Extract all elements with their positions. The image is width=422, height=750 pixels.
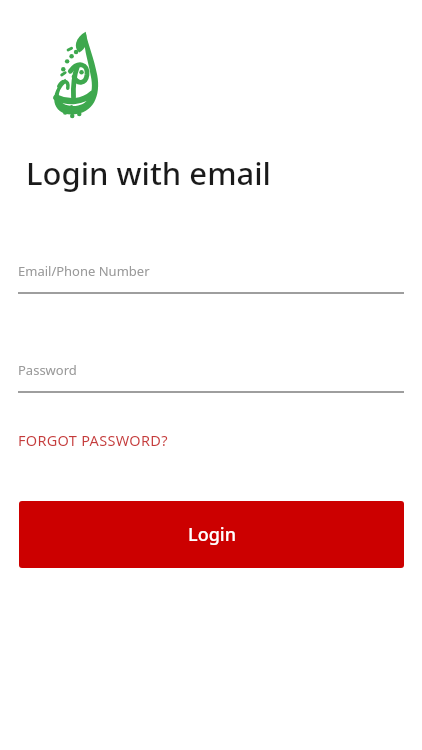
staticText: Email/Phone Number: [18, 262, 150, 280]
staticText: Login: [188, 522, 236, 547]
button[interactable]: FORGOT PASSWORD?: [18, 428, 168, 452]
button[interactable]: Login: [19, 501, 404, 568]
other: Al Jazeera logo: [46, 28, 110, 122]
staticText: FORGOT PASSWORD?: [18, 430, 168, 450]
staticText: Password: [18, 361, 77, 379]
staticText: Login with email: [26, 152, 271, 194]
